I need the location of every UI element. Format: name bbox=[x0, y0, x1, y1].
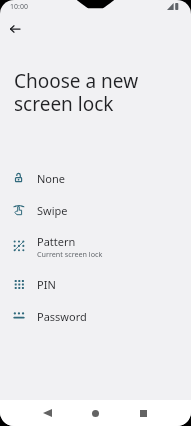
staticText: Pattern bbox=[37, 234, 76, 249]
button[interactable]: Navigate up bbox=[3, 17, 27, 41]
staticText: 10:00 bbox=[10, 2, 28, 12]
staticText: Password bbox=[37, 309, 87, 324]
staticText: PIN bbox=[37, 277, 56, 292]
staticText: Current screen lock bbox=[37, 249, 103, 259]
button[interactable]: Recent apps bbox=[130, 400, 156, 426]
button[interactable]: None bbox=[0, 163, 191, 193]
button[interactable]: Back bbox=[34, 400, 60, 426]
button[interactable]: Pattern bbox=[0, 231, 191, 261]
button[interactable]: Home bbox=[82, 400, 108, 426]
button[interactable]: PIN bbox=[0, 269, 191, 299]
button[interactable]: Swipe bbox=[0, 195, 191, 225]
button[interactable]: Password bbox=[0, 301, 191, 331]
staticText: None bbox=[37, 171, 66, 186]
staticText: Choose a new screen lock bbox=[14, 68, 139, 117]
staticText: Swipe bbox=[37, 203, 68, 218]
